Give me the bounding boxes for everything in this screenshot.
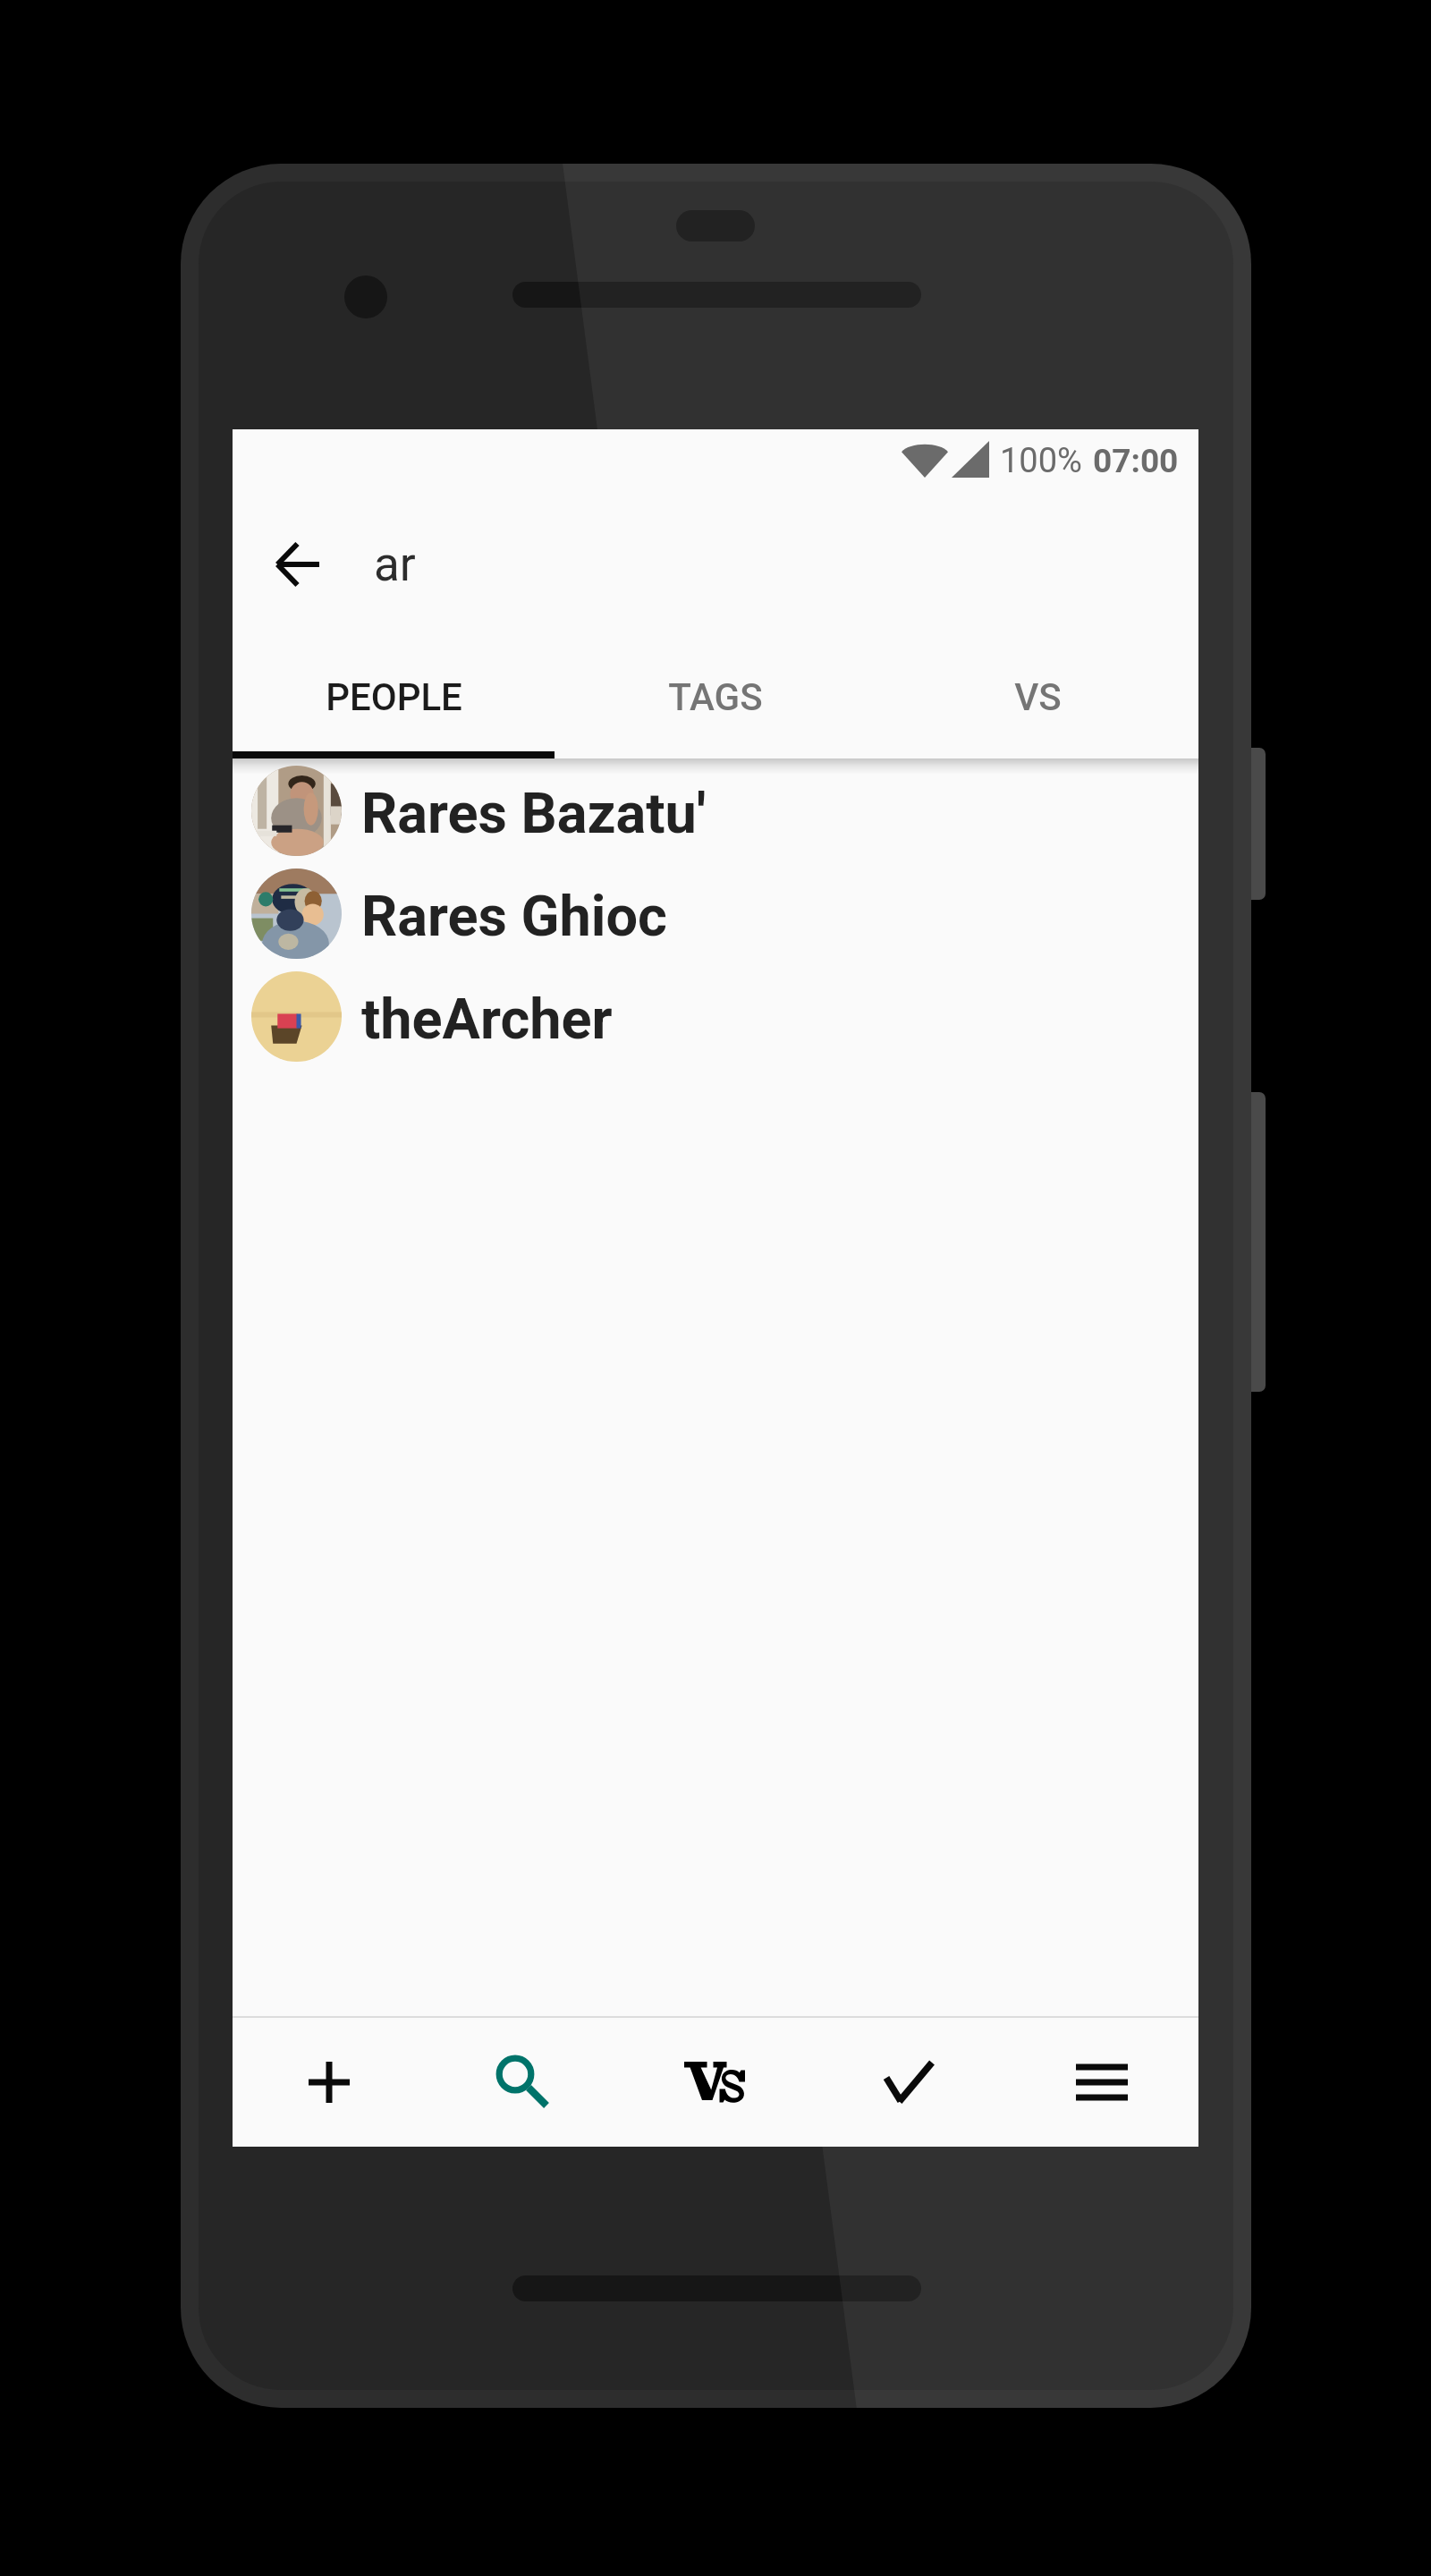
button[interactable]: Add [233,2018,426,2147]
staticText: Rares Ghioc [361,884,667,950]
staticText: VS [1014,675,1062,719]
button[interactable]: Rares Ghioc [233,862,1198,965]
staticText: Rares Bazatu' [361,781,707,847]
staticText: ar [374,537,416,592]
button[interactable]: VS [876,648,1198,746]
staticText: 100% [1000,441,1082,481]
button[interactable]: Rares Bazatu' [233,759,1198,862]
button[interactable]: Search [426,2018,619,2147]
button[interactable]: PEOPLE [233,648,555,746]
staticText: PEOPLE [326,675,462,719]
button[interactable]: Back [254,521,340,607]
button[interactable]: theArcher [233,965,1198,1068]
button[interactable]: Versus [619,2018,812,2147]
button[interactable]: TAGS [555,648,876,746]
staticText: TAGS [668,675,763,719]
button[interactable]: Menu [1005,2018,1198,2147]
button[interactable]: Confirm [812,2018,1005,2147]
staticText: theArcher [361,987,613,1053]
staticText: 07:00 [1093,442,1179,480]
